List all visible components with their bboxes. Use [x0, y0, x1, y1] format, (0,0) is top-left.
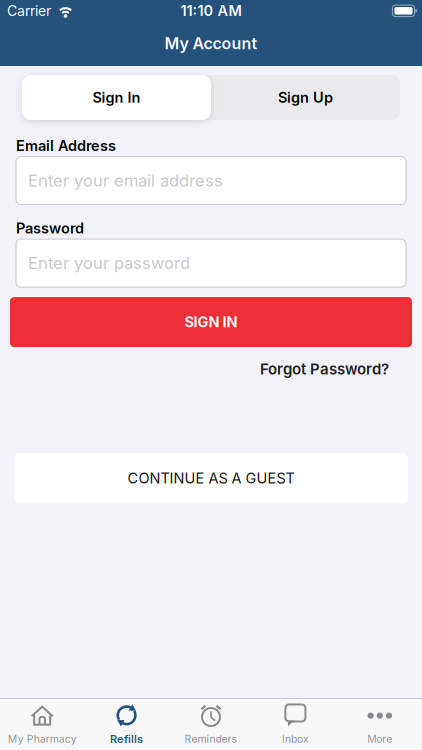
button[interactable]: Forgot Password? [260, 360, 389, 378]
staticText: SIGN IN [184, 313, 237, 331]
button[interactable]: Refills [84, 699, 169, 750]
button[interactable]: More [338, 699, 422, 750]
staticText: My Account [164, 34, 257, 53]
staticText: Forgot Password? [260, 360, 389, 378]
staticText: Carrier [7, 2, 51, 19]
staticText: Enter your password [28, 253, 190, 273]
staticText: CONTINUE AS A GUEST [127, 469, 294, 487]
staticText: 11:10 AM [180, 2, 241, 19]
staticText: Email Address [16, 137, 116, 154]
staticText: My Pharmacy [8, 733, 77, 745]
button[interactable]: My Pharmacy [0, 699, 84, 750]
staticText: Enter your email address [28, 171, 223, 191]
button[interactable]: Sign In [22, 75, 211, 120]
staticText: Sign Up [278, 89, 333, 106]
staticText: Password [16, 219, 84, 237]
button[interactable]: CONTINUE AS A GUEST [14, 453, 408, 503]
staticText: Inbox [282, 733, 309, 745]
staticText: Refills [110, 732, 143, 746]
staticText: Reminders [184, 733, 237, 745]
button[interactable]: Reminders [169, 699, 253, 750]
staticText: More [367, 733, 392, 745]
button[interactable]: Inbox [253, 699, 338, 750]
staticText: Sign In [92, 89, 140, 106]
button[interactable]: SIGN IN [10, 297, 412, 347]
button[interactable]: Sign Up [211, 75, 400, 120]
